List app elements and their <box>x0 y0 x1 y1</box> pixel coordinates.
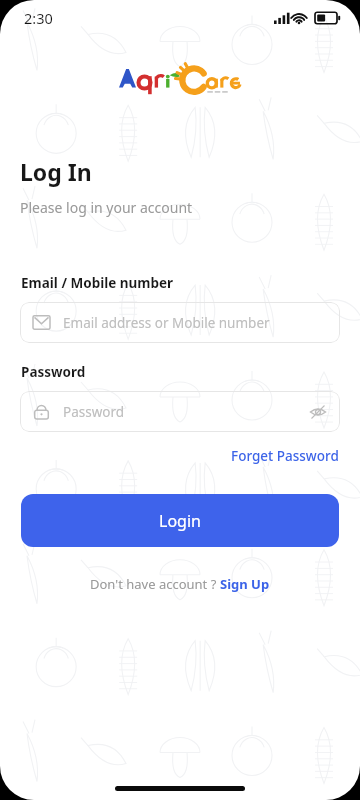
button[interactable]: Login <box>21 494 339 547</box>
staticText: Forget Password <box>231 447 339 465</box>
staticText: Sign Up <box>220 575 270 593</box>
staticText: Please log in your account <box>20 198 193 217</box>
staticText: Email / Mobile number <box>21 274 174 292</box>
staticText: 2:30 <box>24 8 53 28</box>
staticText: Password <box>63 403 309 421</box>
button[interactable]: Sign Up <box>220 573 270 595</box>
button[interactable]: Show password <box>309 403 327 421</box>
staticText: Login <box>159 510 201 532</box>
staticText: Password <box>21 363 86 381</box>
other: Password <box>33 403 50 420</box>
staticText: Don't have account ? <box>90 575 220 593</box>
other: Email <box>33 314 50 331</box>
staticText: Log In <box>20 156 92 187</box>
button[interactable]: Email <box>20 302 340 343</box>
button[interactable]: Password <box>20 391 340 432</box>
staticText: Email address or Mobile number <box>63 314 327 332</box>
button[interactable]: Forget Password <box>231 445 360 467</box>
